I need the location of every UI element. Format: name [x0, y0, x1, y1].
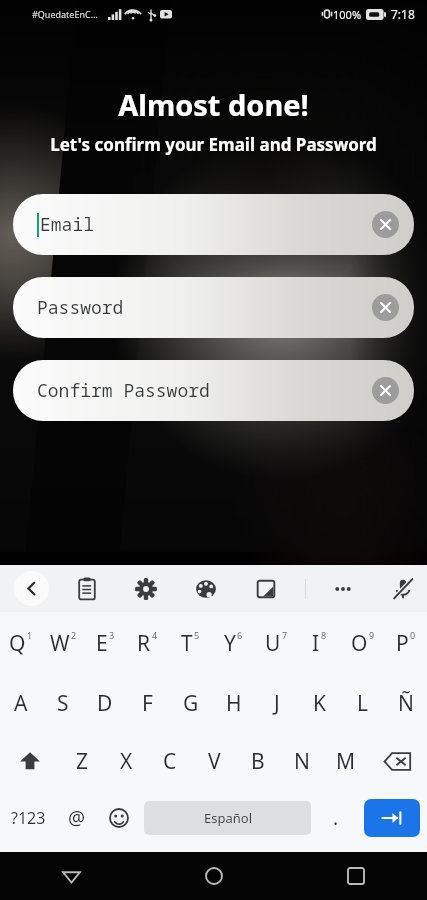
button[interactable]: Voice input off — [390, 576, 416, 602]
staticText: Z — [76, 747, 89, 776]
button[interactable]: Clear Email — [372, 211, 399, 238]
staticText: Email — [40, 212, 94, 237]
button[interactable]: Confirm Password — [13, 360, 414, 421]
button[interactable]: J — [255, 674, 298, 732]
button[interactable]: Clipboard — [74, 576, 100, 602]
staticText: 8 — [321, 629, 327, 641]
button[interactable]: Theme — [193, 576, 219, 602]
staticText: Y — [224, 629, 236, 658]
staticText: N — [294, 747, 310, 776]
staticText: O — [351, 629, 368, 658]
staticText: 5 — [194, 629, 200, 641]
staticText: V — [208, 747, 221, 776]
staticText: G — [183, 689, 199, 718]
button[interactable]: Shift — [0, 732, 60, 790]
staticText: 100% — [333, 7, 362, 22]
button[interactable]: T — [169, 612, 212, 674]
button[interactable]: E — [84, 612, 126, 674]
staticText: 4 — [152, 629, 158, 641]
button[interactable]: Q — [0, 612, 42, 674]
staticText: W — [50, 629, 70, 658]
button[interactable]: P — [384, 612, 427, 674]
staticText: J — [274, 689, 280, 718]
button[interactable]: Emoji — [98, 790, 140, 846]
button[interactable]: F — [126, 674, 169, 732]
staticText: M — [336, 747, 356, 776]
button[interactable]: ?123 — [0, 790, 56, 846]
staticText: 7:18 — [391, 6, 415, 22]
button[interactable]: Hide toolbar — [14, 571, 49, 606]
button[interactable]: I — [298, 612, 341, 674]
staticText: Ñ — [398, 689, 414, 718]
button[interactable]: Next — [364, 799, 420, 837]
button[interactable]: U — [255, 612, 298, 674]
button[interactable]: @ — [56, 790, 98, 846]
staticText: 7 — [282, 629, 288, 641]
staticText: L — [357, 689, 369, 718]
button[interactable]: Password — [13, 277, 414, 338]
staticText: 3 — [109, 629, 115, 641]
staticText: X — [120, 747, 133, 776]
button[interactable]: D — [84, 674, 126, 732]
staticText: 2 — [71, 629, 77, 641]
staticText: I — [312, 629, 320, 658]
staticText: H — [226, 689, 242, 718]
staticText: 9 — [369, 629, 375, 641]
staticText: @ — [68, 805, 86, 831]
staticText: ?123 — [11, 807, 46, 829]
staticText: R — [137, 629, 151, 658]
button[interactable]: More options — [330, 576, 356, 602]
staticText: P — [396, 629, 409, 658]
staticText: Almost done! — [118, 85, 309, 124]
button[interactable]: Backspace — [368, 732, 427, 790]
button[interactable]: Clear Confirm Password — [372, 377, 399, 404]
staticText: T — [181, 629, 193, 658]
staticText: U — [265, 629, 281, 658]
button[interactable]: Y — [212, 612, 255, 674]
button[interactable]: G — [169, 674, 212, 732]
button[interactable]: X — [104, 732, 148, 790]
staticText: Confirm Password — [37, 378, 210, 403]
staticText: E — [96, 629, 108, 658]
staticText: . — [333, 805, 339, 831]
staticText: 0 — [410, 629, 416, 641]
button[interactable]: K — [298, 674, 341, 732]
button[interactable]: L — [341, 674, 384, 732]
staticText: F — [142, 689, 153, 718]
button[interactable]: N — [280, 732, 324, 790]
staticText: Password — [37, 295, 124, 320]
button[interactable]: Recents — [285, 852, 427, 900]
staticText: 6 — [237, 629, 243, 641]
staticText: K — [313, 689, 326, 718]
button[interactable]: M — [324, 732, 368, 790]
button[interactable]: Resize keyboard — [253, 576, 279, 602]
staticText: 1 — [27, 629, 33, 641]
button[interactable]: Español — [144, 801, 311, 835]
button[interactable]: Z — [60, 732, 104, 790]
staticText: S — [57, 689, 69, 718]
button[interactable]: C — [148, 732, 192, 790]
staticText: #QuedateEnC… — [32, 8, 98, 20]
staticText: Q — [9, 629, 26, 658]
staticText: A — [14, 689, 28, 718]
button[interactable]: Settings — [133, 576, 159, 602]
button[interactable]: B — [236, 732, 280, 790]
button[interactable]: H — [212, 674, 255, 732]
button[interactable]: Home — [143, 852, 285, 900]
staticText: B — [251, 747, 265, 776]
button[interactable]: Back — [0, 852, 143, 900]
button[interactable]: R — [126, 612, 169, 674]
button[interactable]: O — [341, 612, 384, 674]
button[interactable]: Ñ — [384, 674, 427, 732]
button[interactable]: S — [42, 674, 84, 732]
button[interactable]: W — [42, 612, 84, 674]
button[interactable]: A — [0, 674, 42, 732]
button[interactable]: . — [315, 790, 357, 846]
staticText: D — [97, 689, 113, 718]
button[interactable]: Clear Password — [372, 294, 399, 321]
staticText: C — [163, 747, 177, 776]
staticText: Español — [204, 809, 252, 827]
button[interactable]: V — [192, 732, 236, 790]
button[interactable]: Email — [13, 194, 414, 255]
staticText: Let's confirm your Email and Password — [50, 133, 377, 156]
